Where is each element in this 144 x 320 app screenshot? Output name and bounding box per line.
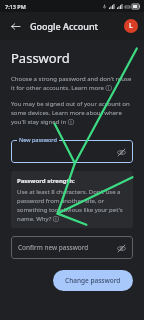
button[interactable]: Show password [11, 140, 133, 163]
staticText: Confirm new password [18, 243, 89, 252]
staticText: Google Account [30, 20, 99, 32]
staticText: Password strength: [17, 177, 75, 185]
staticText: L [129, 21, 133, 31]
staticText: 7:13 PM [5, 3, 26, 10]
button[interactable]: Confirm new password [11, 236, 133, 259]
staticText: Change password [65, 276, 121, 285]
button[interactable]: Show password [115, 146, 127, 158]
button[interactable]: Change password [53, 270, 133, 291]
button[interactable]: Show password [115, 242, 127, 254]
staticText: New password [19, 136, 57, 143]
button[interactable]: Account [124, 19, 138, 33]
staticText: Choose a strong password and don't reuse… [11, 75, 133, 92]
staticText: Use at least 8 characters. Don't use a p… [17, 188, 127, 222]
staticText: Password [11, 49, 70, 67]
staticText: You may be signed out of your account on… [11, 100, 133, 126]
button[interactable]: Back [6, 17, 24, 35]
